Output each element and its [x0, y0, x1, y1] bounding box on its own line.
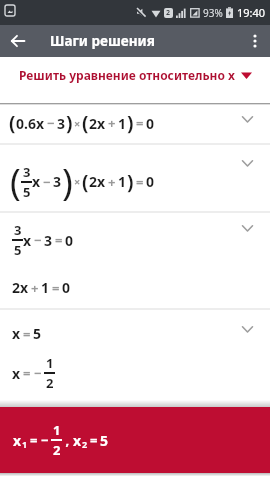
staticText: −	[34, 364, 42, 382]
staticText: x	[23, 231, 32, 250]
staticText: (	[82, 110, 89, 136]
staticText: 3	[53, 172, 62, 191]
staticText: 3	[57, 114, 66, 133]
staticText: ,	[62, 431, 73, 449]
staticText: 2x	[89, 114, 106, 133]
staticText: =	[23, 325, 31, 343]
staticText: 2x	[12, 278, 29, 297]
staticText: Решить уравнение относительно x	[19, 67, 235, 83]
staticText: 5	[100, 431, 109, 450]
staticText: 2	[82, 438, 88, 450]
button[interactable]: Решить уравнение относительно x	[0, 57, 270, 103]
staticText: =	[23, 364, 31, 382]
staticText: 1	[118, 172, 127, 191]
staticText: 2x	[89, 172, 106, 191]
staticText: 1	[53, 421, 61, 439]
staticText: 0.6x	[16, 114, 45, 133]
staticText: 1	[41, 278, 50, 297]
staticText: 5	[23, 183, 31, 201]
staticText: ×	[74, 174, 81, 189]
staticText: x	[32, 172, 41, 191]
staticText: 5	[33, 324, 42, 343]
staticText: −	[34, 231, 42, 249]
staticText: (	[9, 110, 16, 136]
button[interactable]: 3	[0, 213, 270, 310]
staticText: 19:40	[237, 5, 266, 20]
staticText: x	[12, 364, 21, 383]
staticText: −	[43, 173, 51, 191]
staticText: )	[66, 110, 73, 136]
staticText: =	[52, 279, 60, 297]
staticText: 1	[118, 114, 127, 133]
staticText: +	[31, 279, 39, 297]
staticText: =	[30, 431, 38, 449]
staticText: x	[73, 431, 82, 450]
staticText: 2	[53, 441, 61, 459]
staticText: (	[82, 169, 89, 195]
staticText: 1	[46, 354, 54, 372]
staticText: 93%	[203, 6, 223, 20]
staticText: −	[47, 114, 55, 132]
staticText: )	[127, 169, 134, 195]
staticText: =	[136, 173, 144, 191]
staticText: 2	[46, 374, 54, 392]
staticText: x	[13, 431, 22, 450]
button[interactable]: (	[0, 145, 270, 213]
staticText: ×	[74, 116, 81, 131]
staticText: =	[55, 231, 63, 249]
staticText: −	[41, 431, 49, 449]
button[interactable]	[8, 31, 28, 51]
button[interactable]: x	[0, 310, 270, 400]
staticText: Шаги решения	[50, 32, 155, 50]
staticText: 0	[146, 172, 155, 191]
button[interactable]	[246, 32, 264, 50]
staticText: +	[108, 173, 116, 191]
staticText: 0	[146, 114, 155, 133]
staticText: x	[12, 324, 21, 343]
staticText: 0	[65, 231, 74, 250]
staticText: )	[62, 157, 73, 206]
staticText: 3	[44, 231, 53, 250]
staticText: 3	[14, 221, 22, 239]
staticText: 1	[22, 438, 28, 450]
button[interactable]: (	[0, 105, 270, 145]
staticText: +	[108, 114, 116, 132]
button[interactable]: x	[0, 407, 270, 473]
staticText: 2	[166, 8, 171, 18]
staticText: 0	[62, 278, 71, 297]
staticText: (	[10, 157, 21, 206]
staticText: 3	[23, 163, 31, 181]
staticText: =	[90, 431, 98, 449]
staticText: )	[127, 110, 134, 136]
staticText: =	[136, 114, 144, 132]
staticText: 5	[14, 241, 22, 259]
